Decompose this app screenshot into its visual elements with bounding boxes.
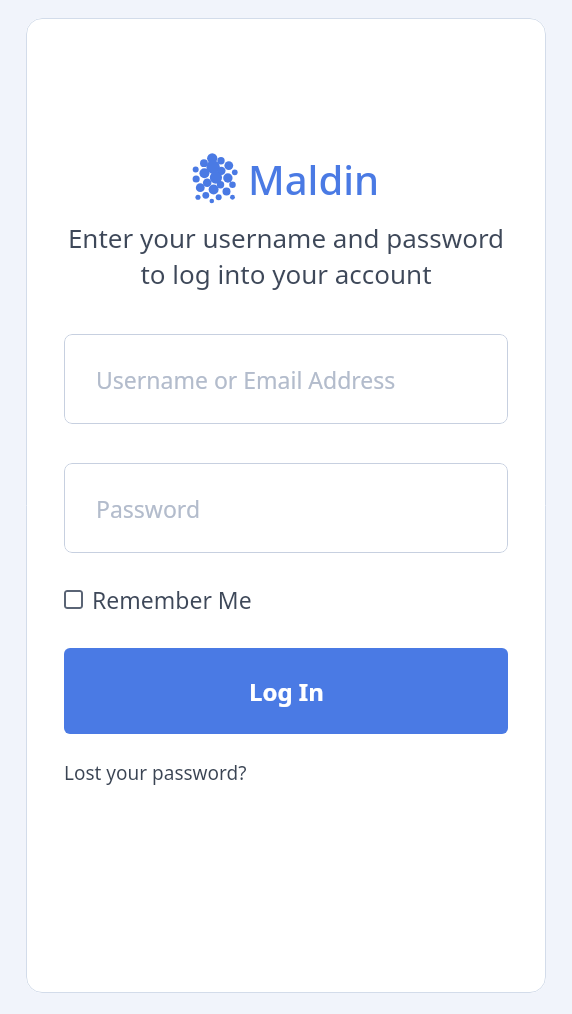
staticText: Password xyxy=(96,493,201,524)
staticText: Username or Email Address xyxy=(96,364,396,395)
button[interactable]: Lost your password? xyxy=(64,760,247,786)
button[interactable]: Username or Email Address input xyxy=(64,334,508,424)
staticText: Remember Me xyxy=(92,584,252,615)
staticText: Lost your password? xyxy=(64,760,247,786)
button[interactable]: Remember Me xyxy=(64,580,252,619)
staticText: Maldin xyxy=(248,152,380,206)
staticText: Log In xyxy=(249,675,324,708)
button[interactable]: Password input xyxy=(64,463,508,553)
button[interactable]: Log In xyxy=(64,648,508,734)
staticText: Enter your username and password to log … xyxy=(50,220,522,292)
